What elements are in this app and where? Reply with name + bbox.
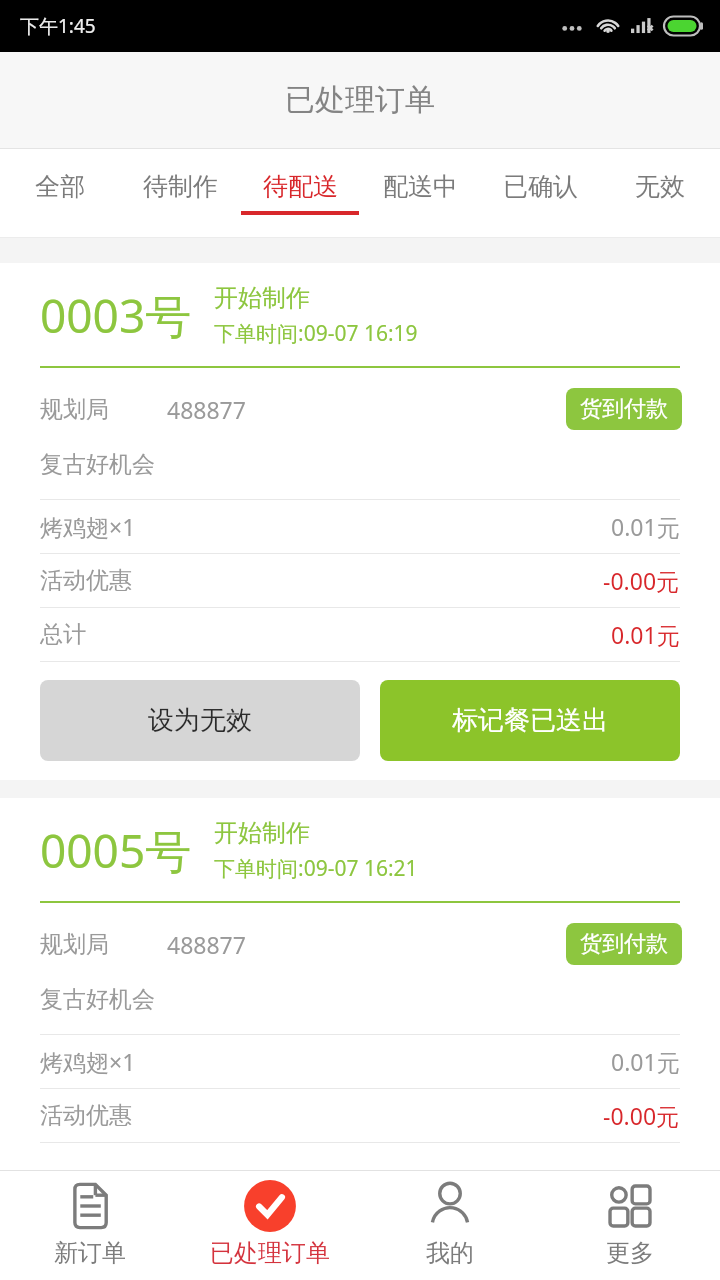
button[interactable]: 待配送 — [240, 149, 360, 237]
button[interactable]: 货到付款 — [566, 923, 682, 965]
staticText: 新订单 — [54, 1238, 126, 1268]
staticText: 已处理订单 — [210, 1238, 330, 1268]
staticText: 已确认 — [503, 171, 578, 202]
staticText: 复古好机会 — [40, 450, 155, 479]
staticText: 配送中 — [383, 171, 458, 202]
staticText: 设为无效 — [148, 704, 252, 737]
staticText: 货到付款 — [580, 930, 668, 958]
staticText: 0.01元 — [611, 1046, 680, 1077]
staticText: 标记餐已送出 — [452, 704, 608, 737]
staticText: 488877 — [167, 394, 246, 425]
staticText: 规划局 — [40, 395, 109, 424]
staticText: 0.01元 — [611, 619, 680, 650]
button[interactable]: 已处理订单 — [180, 1171, 360, 1280]
staticText: 待配送 — [263, 171, 338, 202]
staticText: 复古好机会 — [40, 985, 155, 1014]
staticText: 烤鸡翅×1 — [40, 511, 136, 542]
staticText: 488877 — [167, 929, 246, 960]
other: 已处理订单 — [243, 1179, 297, 1233]
button[interactable]: 我的 — [360, 1171, 540, 1280]
button[interactable]: 全部 — [0, 149, 120, 237]
button[interactable]: 新订单 — [0, 1171, 180, 1280]
staticText: 开始制作 — [214, 818, 310, 848]
staticText: 下午1:45 — [20, 13, 96, 39]
staticText: 开始制作 — [214, 283, 310, 313]
button[interactable]: 配送中 — [360, 149, 480, 237]
staticText: 活动优惠 — [40, 566, 132, 595]
staticText: 规划局 — [40, 930, 109, 959]
staticText: -0.00元 — [603, 1100, 680, 1131]
staticText: 活动优惠 — [40, 1101, 132, 1130]
staticText: 下单时间:09-07 16:19 — [214, 319, 418, 348]
staticText: -0.00元 — [603, 565, 680, 596]
staticText: 总计 — [40, 620, 86, 649]
staticText: 0.01元 — [611, 511, 680, 542]
staticText: 0003号 — [40, 284, 192, 347]
staticText: 更多 — [606, 1238, 654, 1268]
other: 更多 — [603, 1179, 657, 1233]
staticText: 已处理订单 — [285, 81, 435, 119]
other: 我的 — [423, 1179, 477, 1233]
staticText: 烤鸡翅×1 — [40, 1046, 136, 1077]
button[interactable]: 待制作 — [120, 149, 240, 237]
staticText: 下单时间:09-07 16:21 — [214, 854, 418, 883]
button[interactable]: 无效 — [600, 149, 720, 237]
button[interactable]: 标记餐已送出 — [380, 680, 680, 761]
staticText: 待制作 — [143, 171, 218, 202]
button[interactable]: 已确认 — [480, 149, 600, 237]
staticText: 无效 — [635, 171, 685, 202]
button[interactable]: 设为无效 — [40, 680, 360, 761]
staticText: 货到付款 — [580, 395, 668, 423]
button[interactable]: 货到付款 — [566, 388, 682, 430]
staticText: 0005号 — [40, 819, 192, 882]
button[interactable]: 更多 — [540, 1171, 720, 1280]
staticText: 全部 — [35, 171, 85, 202]
staticText: 我的 — [426, 1238, 474, 1268]
